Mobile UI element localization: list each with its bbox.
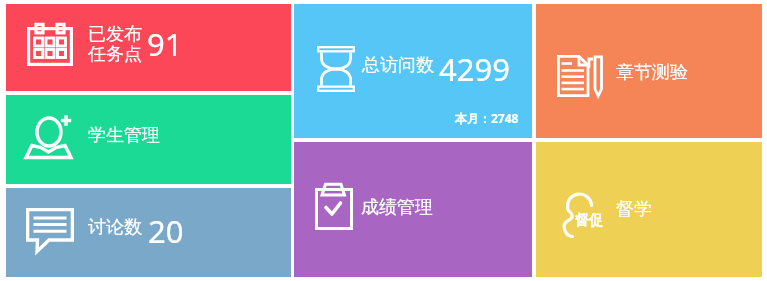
button[interactable]: 学生管理 [6,95,291,184]
staticText: 督促 [575,212,603,230]
staticText: 任务点 [88,43,142,66]
staticText: 已发布 [88,23,142,46]
staticText: 学生管理 [88,124,160,147]
staticText: 章节测验 [616,61,688,84]
staticText: 本月：2748 [455,110,519,126]
staticText: 成绩管理 [361,196,433,219]
staticText: 91 [147,23,183,65]
button[interactable]: 督学 [536,142,762,277]
staticText: 总访问数 [362,54,434,77]
staticText: 4299 [439,48,510,90]
button[interactable]: 章节测验 [536,4,762,138]
staticText: 20 [148,210,184,252]
button[interactable]: 总访问数 4299 [294,4,532,138]
button[interactable]: 成绩管理 [294,142,532,277]
button[interactable]: 已发布任务点 91 [6,4,291,91]
staticText: 讨论数 [88,216,142,239]
button[interactable]: 讨论数 20 [6,188,291,277]
staticText: 督学 [616,198,652,221]
